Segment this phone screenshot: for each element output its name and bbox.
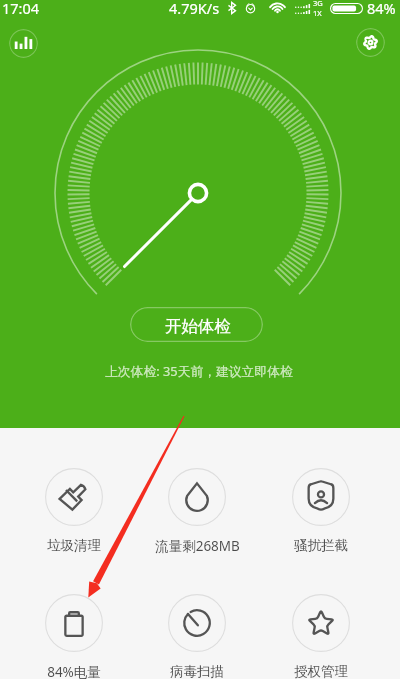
staticText: 4.79K/s — [169, 0, 220, 18]
button[interactable]: 84%电量 — [16, 594, 132, 679]
staticText: 授权管理 — [294, 663, 348, 679]
button[interactable]: 授权管理 — [263, 594, 379, 679]
button[interactable]: 骚扰拦截 — [263, 468, 379, 554]
staticText: 垃圾清理 — [47, 537, 101, 554]
staticText: 开始体检 — [165, 316, 231, 337]
button[interactable]: 开始体检 — [130, 307, 263, 342]
button[interactable]: Statistics — [9, 29, 38, 58]
staticText: 17:04 — [2, 0, 40, 18]
staticText: 3G — [313, 0, 323, 8]
staticText: 84%电量 — [47, 663, 101, 679]
staticText: 流量剩268MB — [155, 537, 240, 555]
button[interactable]: 流量剩268MB — [139, 468, 255, 555]
staticText: 上次体检: 35天前，建议立即体检 — [105, 362, 293, 379]
staticText: 1X — [313, 8, 322, 18]
button[interactable]: 病毒扫描 — [139, 594, 255, 679]
staticText: 病毒扫描 — [170, 663, 224, 679]
button[interactable]: 垃圾清理 — [16, 468, 132, 554]
staticText: 骚扰拦截 — [294, 537, 348, 554]
button[interactable]: Settings — [356, 28, 385, 57]
staticText: 84% — [367, 0, 396, 18]
